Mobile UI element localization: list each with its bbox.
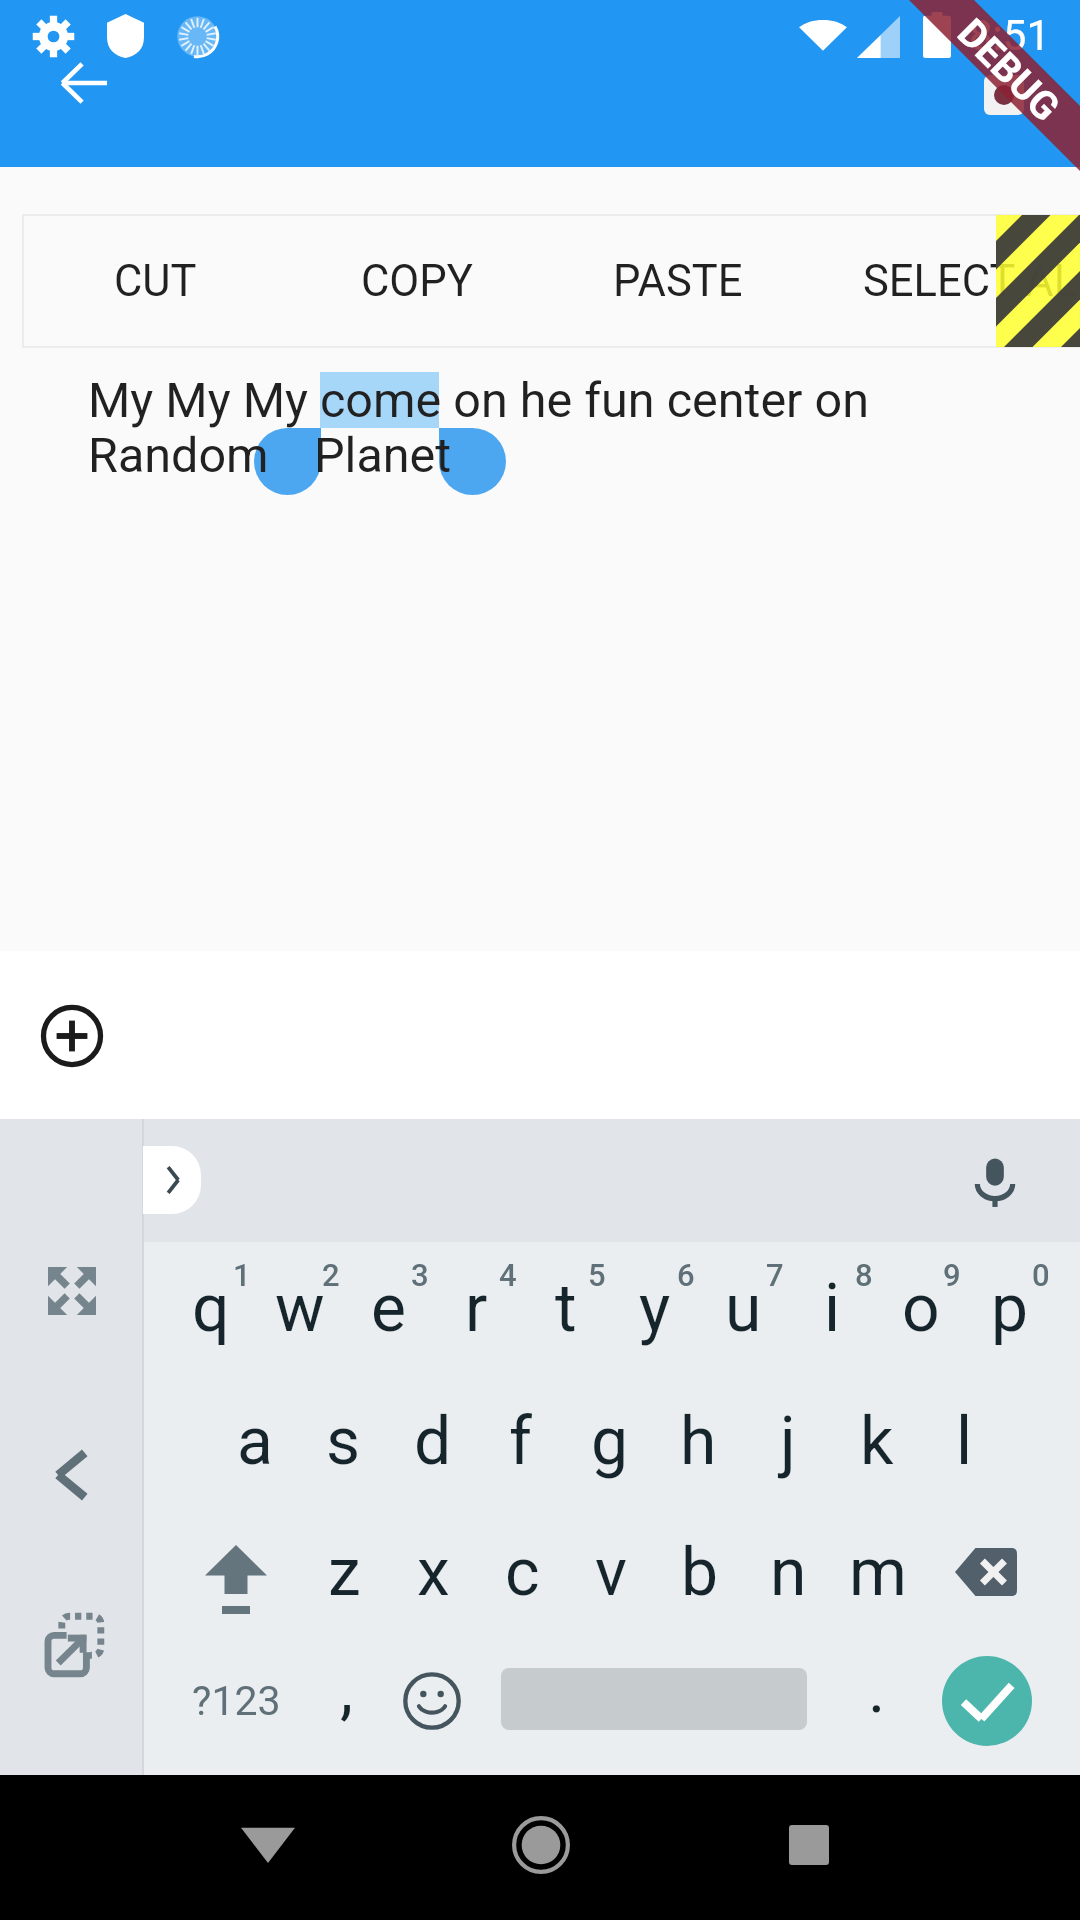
button[interactable]: x xyxy=(389,1512,478,1632)
staticText: ?123 xyxy=(192,1677,281,1725)
staticText: 5 xyxy=(588,1257,606,1293)
staticText: 0 xyxy=(1032,1257,1050,1293)
button[interactable]: q xyxy=(166,1250,255,1370)
button[interactable]: p xyxy=(965,1250,1054,1370)
button[interactable]: t xyxy=(521,1250,610,1370)
staticText: My My My come on he fun center on xyxy=(88,372,870,429)
staticText: i xyxy=(824,1270,841,1347)
staticText: v xyxy=(595,1534,627,1611)
button[interactable]: Back xyxy=(36,35,132,131)
staticText: 2 xyxy=(322,1257,340,1293)
staticText: c xyxy=(505,1534,540,1611)
staticText: t xyxy=(555,1270,577,1347)
staticText: SELECT ALL xyxy=(863,256,1080,307)
staticText: o xyxy=(902,1270,940,1347)
button[interactable]: v xyxy=(566,1512,655,1632)
staticText: 1 xyxy=(233,1257,251,1293)
staticText: 6 xyxy=(677,1257,695,1293)
staticText: f xyxy=(509,1403,532,1480)
staticText: u xyxy=(725,1270,762,1347)
staticText: p xyxy=(991,1270,1029,1347)
button[interactable]: ?123 xyxy=(178,1641,294,1761)
button[interactable]: Expand keyboard xyxy=(28,1247,116,1335)
button[interactable]: n xyxy=(744,1512,833,1632)
staticText: m xyxy=(849,1534,907,1611)
button[interactable]: Add xyxy=(26,990,118,1082)
staticText: r xyxy=(465,1270,488,1347)
button[interactable]: Backspace xyxy=(930,1512,1042,1632)
staticText: 8:51 xyxy=(969,11,1050,60)
button[interactable]: Shift xyxy=(180,1512,292,1632)
staticText: e xyxy=(371,1270,406,1347)
button[interactable]: u xyxy=(699,1250,788,1370)
staticText: q xyxy=(192,1270,230,1347)
staticText: . xyxy=(868,1651,886,1728)
button[interactable]: Home xyxy=(485,1789,597,1901)
button[interactable]: l xyxy=(920,1381,1009,1501)
staticText: x xyxy=(417,1534,450,1611)
button[interactable]: SELECT ALL xyxy=(808,215,1080,347)
button[interactable]: COPY xyxy=(286,215,547,347)
staticText: CUT xyxy=(114,256,197,307)
staticText: 9 xyxy=(943,1257,961,1293)
button[interactable]: PASTE xyxy=(547,215,808,347)
staticText: 8 xyxy=(855,1257,873,1293)
staticText: j xyxy=(780,1403,796,1480)
staticText: g xyxy=(591,1403,629,1480)
staticText: a xyxy=(237,1403,273,1480)
staticText: Planet xyxy=(314,427,452,484)
button[interactable]: Previous xyxy=(28,1431,116,1519)
button[interactable]: s xyxy=(299,1381,388,1501)
button[interactable]: e xyxy=(344,1250,433,1370)
button[interactable]: y xyxy=(610,1250,699,1370)
button[interactable]: Show suggestions xyxy=(143,1146,201,1214)
staticText: h xyxy=(680,1403,717,1480)
staticText: 3 xyxy=(411,1257,429,1293)
staticText: n xyxy=(770,1534,807,1611)
staticText: s xyxy=(326,1403,361,1480)
staticText: k xyxy=(860,1403,894,1480)
button[interactable]: j xyxy=(743,1381,832,1501)
button[interactable]: CUT xyxy=(25,215,286,347)
staticText: 4 xyxy=(499,1257,517,1293)
button[interactable]: Open in new window xyxy=(28,1601,116,1689)
button[interactable]: m xyxy=(833,1512,922,1632)
button[interactable]: , xyxy=(302,1641,390,1761)
button[interactable]: b xyxy=(655,1512,744,1632)
staticText: w xyxy=(275,1270,325,1347)
button[interactable]: Recents xyxy=(753,1789,865,1901)
button[interactable]: r xyxy=(432,1250,521,1370)
button[interactable]: c xyxy=(478,1512,567,1632)
button[interactable]: o xyxy=(876,1250,965,1370)
button[interactable]: h xyxy=(654,1381,743,1501)
staticText: COPY xyxy=(361,256,473,307)
button[interactable]: Voice input xyxy=(950,1137,1040,1227)
button[interactable]: Emoji xyxy=(388,1641,476,1761)
button[interactable]: a xyxy=(210,1381,299,1501)
staticText: z xyxy=(328,1534,361,1611)
button[interactable]: . xyxy=(833,1641,921,1761)
staticText: d xyxy=(414,1403,452,1480)
staticText: b xyxy=(681,1534,719,1611)
staticText: , xyxy=(340,1651,353,1728)
button[interactable]: w xyxy=(255,1250,344,1370)
button[interactable]: z xyxy=(300,1512,389,1632)
staticText: Random xyxy=(88,427,269,484)
button[interactable]: i xyxy=(788,1250,877,1370)
button[interactable]: d xyxy=(388,1381,477,1501)
staticText: y xyxy=(639,1270,671,1347)
staticText: PASTE xyxy=(613,256,743,307)
button[interactable]: k xyxy=(832,1381,921,1501)
staticText: DEBUG xyxy=(948,10,1069,131)
staticText: 7 xyxy=(766,1257,784,1293)
button[interactable]: f xyxy=(476,1381,565,1501)
button[interactable]: g xyxy=(565,1381,654,1501)
button[interactable]: Back xyxy=(212,1789,324,1901)
staticText: l xyxy=(956,1403,973,1480)
button[interactable]: Enter xyxy=(942,1656,1032,1746)
